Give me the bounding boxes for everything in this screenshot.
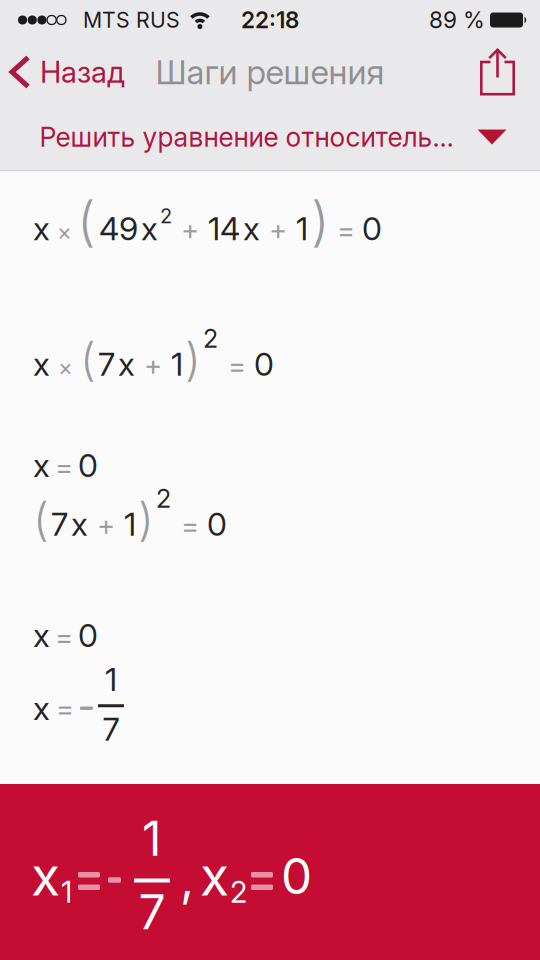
button[interactable]: Решить уравнение относитель… bbox=[0, 104, 540, 170]
staticText: x bbox=[33, 210, 50, 248]
staticText: 1 bbox=[296, 210, 308, 248]
staticText: x bbox=[33, 616, 50, 654]
staticText: Решить уравнение относитель… bbox=[39, 121, 453, 153]
staticText: 1 bbox=[171, 345, 183, 383]
staticText: 0 bbox=[281, 847, 312, 905]
staticText: MTS RUS bbox=[83, 7, 180, 33]
staticText: 2 bbox=[230, 875, 247, 909]
staticText: Шаги решения bbox=[155, 52, 384, 92]
staticText: 7 bbox=[51, 505, 68, 543]
staticText: 0 bbox=[78, 446, 98, 484]
staticText: ( bbox=[80, 332, 96, 386]
staticText: 1 bbox=[105, 660, 117, 698]
staticText: × bbox=[58, 354, 73, 381]
staticText: ( bbox=[33, 492, 49, 546]
staticText: x bbox=[31, 844, 60, 907]
staticText: 49 bbox=[99, 210, 138, 248]
staticText: 1 bbox=[142, 810, 162, 866]
staticText: Назад bbox=[40, 55, 125, 89]
staticText: ) bbox=[185, 332, 201, 386]
staticText: + bbox=[97, 509, 115, 542]
staticText: x bbox=[118, 345, 135, 383]
staticText: 0 bbox=[362, 210, 382, 248]
staticText: 7 bbox=[98, 345, 115, 383]
staticText: + bbox=[144, 349, 162, 382]
staticText: 0 bbox=[78, 616, 98, 654]
staticText: x bbox=[200, 844, 229, 907]
staticText: 7 bbox=[138, 883, 165, 940]
staticText: 14 bbox=[208, 210, 240, 248]
staticText: 1 bbox=[61, 875, 72, 909]
staticText: = bbox=[56, 692, 74, 725]
staticText: × bbox=[57, 219, 72, 245]
staticText: 1 bbox=[124, 505, 136, 543]
staticText: 2 bbox=[203, 324, 218, 353]
staticText: 0 bbox=[207, 505, 227, 543]
staticText: = bbox=[228, 349, 246, 382]
button[interactable]: Back bbox=[8, 55, 125, 89]
staticText: 89 % bbox=[429, 7, 485, 33]
staticText: 2 bbox=[156, 484, 171, 513]
staticText: , bbox=[180, 849, 194, 907]
staticText: x bbox=[33, 689, 50, 727]
staticText: = bbox=[55, 620, 73, 653]
staticText: + bbox=[269, 214, 287, 247]
staticText: 2 bbox=[160, 204, 172, 228]
staticText: = bbox=[55, 450, 73, 483]
staticText: x bbox=[243, 210, 260, 248]
staticText: x bbox=[33, 446, 50, 484]
staticText: ) bbox=[138, 492, 154, 546]
staticText: ) bbox=[311, 189, 330, 252]
staticText: 0 bbox=[254, 345, 274, 383]
staticText: = bbox=[337, 214, 355, 247]
staticText: 22:18 bbox=[241, 7, 299, 33]
staticText: x bbox=[71, 505, 88, 543]
staticText: = bbox=[181, 509, 199, 542]
staticText: x bbox=[33, 345, 50, 383]
staticText: x bbox=[141, 210, 158, 248]
button[interactable]: Share bbox=[480, 48, 515, 95]
staticText: 7 bbox=[102, 710, 119, 748]
staticText: + bbox=[181, 214, 199, 247]
staticText: ( bbox=[77, 189, 96, 252]
